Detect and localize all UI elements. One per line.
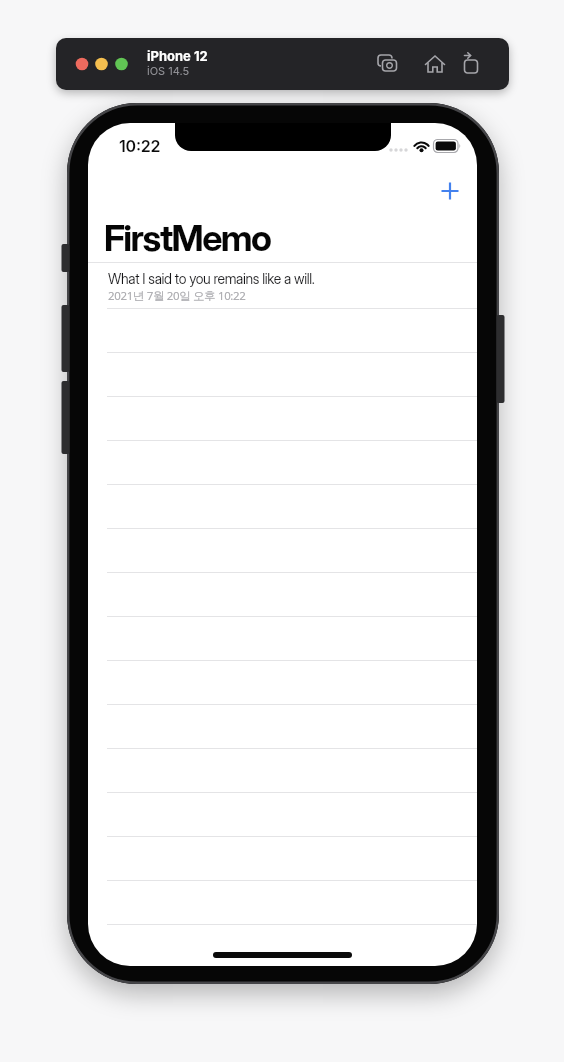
staticText: What I said to you remains like a will. [108,270,315,287]
staticText: iPhone 12 [147,48,208,64]
staticText: 2021년 7월 20일 오후 10:22 [108,288,246,304]
staticText: 10:22 [119,136,161,155]
button[interactable]: What I said to you remains like a will. [88,263,477,308]
button[interactable] [434,175,466,207]
staticText: iOS 14.5 [147,64,190,77]
staticText: FirstMemo [104,216,271,260]
